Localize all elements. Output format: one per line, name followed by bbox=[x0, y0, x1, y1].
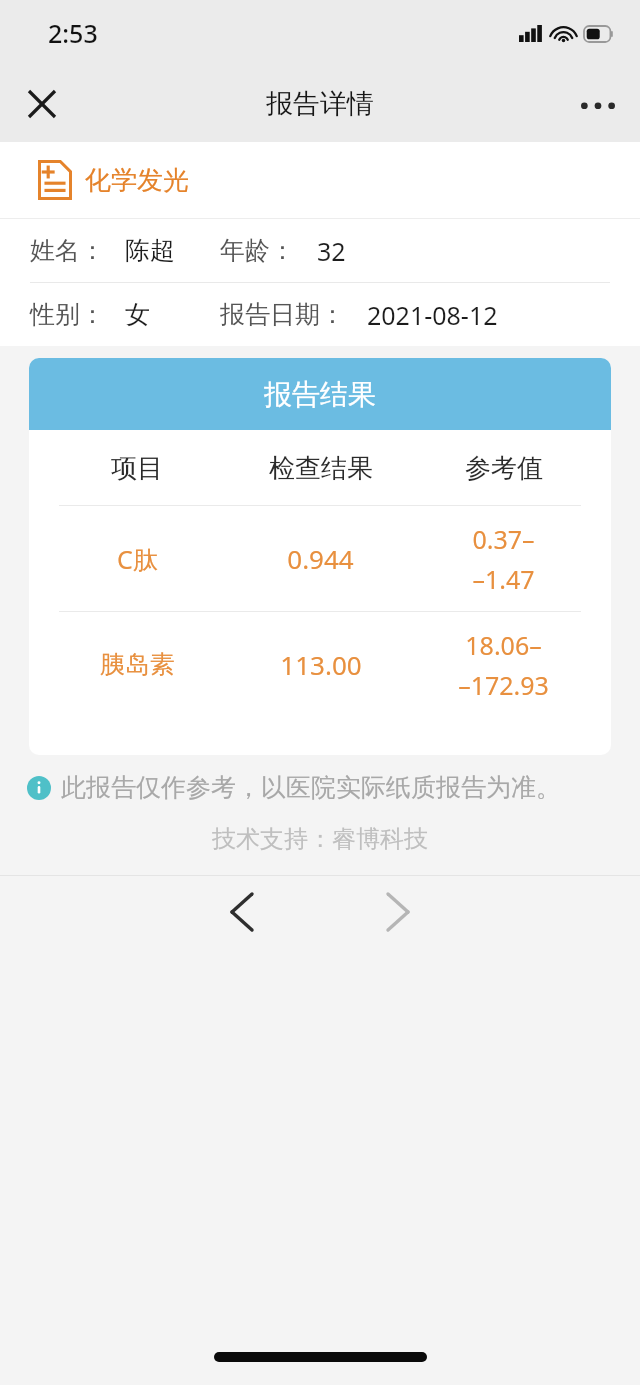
staticText: 检查结果 bbox=[269, 452, 373, 485]
staticText: 2021-08-12 bbox=[367, 298, 498, 332]
staticText: 32 bbox=[317, 234, 346, 268]
staticText: 姓名： bbox=[30, 235, 105, 266]
staticText: 18.06– bbox=[465, 628, 542, 662]
button[interactable]: Forward bbox=[362, 876, 434, 948]
staticText: 报告详情 bbox=[266, 87, 374, 121]
staticText: 113.00 bbox=[280, 647, 362, 682]
staticText: 胰岛素 bbox=[100, 649, 175, 680]
button[interactable]: More options bbox=[570, 76, 626, 132]
staticText: 年龄： bbox=[220, 235, 295, 266]
staticText: 0.37– bbox=[472, 522, 535, 556]
button[interactable]: Close bbox=[14, 76, 70, 132]
staticText: 0.944 bbox=[287, 541, 354, 576]
staticText: 陈超 bbox=[125, 235, 175, 266]
staticText: –1.47 bbox=[472, 562, 535, 596]
staticText: 化学发光 bbox=[85, 164, 189, 197]
staticText: 性别： bbox=[30, 299, 105, 330]
staticText: 2:53 bbox=[48, 16, 98, 50]
staticText: C肽 bbox=[117, 542, 158, 576]
staticText: 项目 bbox=[111, 452, 163, 485]
staticText: 此报告仅作参考，以医院实际纸质报告为准。 bbox=[61, 772, 561, 803]
button[interactable]: Back bbox=[206, 876, 278, 948]
staticText: 女 bbox=[125, 299, 150, 330]
staticText: 技术支持：睿博科技 bbox=[212, 824, 428, 854]
staticText: 报告日期： bbox=[220, 299, 345, 330]
staticText: –172.93 bbox=[458, 668, 549, 702]
staticText: 报告结果 bbox=[264, 377, 376, 412]
staticText: 参考值 bbox=[465, 452, 543, 485]
